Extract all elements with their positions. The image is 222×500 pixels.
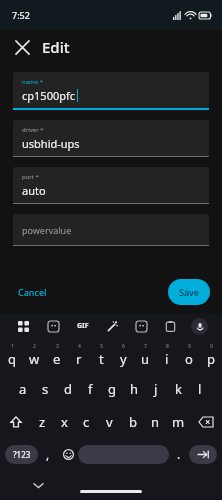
- staticText: port *: [22, 173, 39, 181]
- staticText: h: [130, 380, 139, 398]
- staticText: 5: [100, 343, 103, 350]
- button[interactable]: driver *: [13, 120, 209, 157]
- button[interactable]: j: [145, 372, 167, 405]
- button[interactable]: Apps: [8, 314, 38, 338]
- button[interactable]: 1: [0, 338, 23, 372]
- staticText: b: [129, 413, 137, 431]
- staticText: driver *: [22, 126, 44, 134]
- button[interactable]: Translate: [127, 314, 156, 338]
- button[interactable]: Hide keyboard: [28, 475, 48, 495]
- staticText: d: [64, 380, 72, 398]
- button[interactable]: 8: [156, 338, 178, 372]
- staticText: v: [106, 413, 113, 431]
- button[interactable]: 6: [112, 338, 134, 372]
- staticText: j: [154, 380, 158, 398]
- button[interactable]: 0: [200, 338, 222, 372]
- button[interactable]: powervalue: [13, 214, 209, 246]
- staticText: auto: [22, 183, 46, 198]
- button[interactable]: Cancel: [12, 281, 53, 303]
- button[interactable]: c: [75, 405, 98, 438]
- staticText: cp1500pfc: [22, 88, 76, 103]
- button[interactable]: l: [189, 372, 211, 405]
- button[interactable]: 2: [23, 338, 46, 372]
- button[interactable]: 4: [68, 338, 90, 372]
- staticText: z: [39, 413, 46, 431]
- staticText: o: [185, 350, 193, 368]
- staticText: q: [8, 350, 16, 368]
- staticText: i: [165, 350, 169, 368]
- staticText: u: [141, 350, 150, 368]
- staticText: ?123: [13, 449, 31, 460]
- button[interactable]: f: [79, 372, 101, 405]
- button[interactable]: h: [123, 372, 145, 405]
- staticText: n: [151, 413, 160, 431]
- staticText: l: [198, 380, 202, 398]
- button[interactable]: x: [53, 405, 75, 438]
- staticText: k: [175, 380, 182, 398]
- button[interactable]: g: [101, 372, 123, 405]
- staticText: g: [108, 380, 116, 398]
- staticText: e: [53, 350, 61, 368]
- button[interactable]: ?123: [5, 445, 38, 464]
- staticText: a: [19, 380, 27, 398]
- staticText: 9: [188, 343, 191, 350]
- button[interactable]: Magic: [98, 314, 127, 338]
- staticText: t: [99, 350, 104, 368]
- staticText: powervalue: [22, 224, 72, 236]
- button[interactable]: k: [167, 372, 189, 405]
- button[interactable]: m: [167, 405, 190, 438]
- button[interactable]: Voice input: [185, 314, 214, 338]
- staticText: c: [83, 413, 90, 431]
- staticText: 1: [11, 343, 14, 350]
- staticText: Save: [179, 286, 200, 298]
- staticText: x: [61, 413, 68, 431]
- staticText: .: [177, 446, 181, 462]
- button[interactable]: GIF: [68, 314, 98, 338]
- button[interactable]: 5: [90, 338, 112, 372]
- staticText: name *: [22, 78, 43, 86]
- staticText: w: [29, 350, 40, 368]
- staticText: 6: [122, 343, 125, 350]
- staticText: r: [76, 350, 82, 368]
- button[interactable]: b: [121, 405, 144, 438]
- staticText: usbhid-ups: [22, 136, 80, 151]
- staticText: 7: [144, 343, 147, 350]
- button[interactable]: a: [11, 372, 34, 405]
- button[interactable]: Shift: [0, 405, 31, 438]
- staticText: Edit: [42, 37, 70, 57]
- button[interactable]: .: [169, 438, 189, 470]
- staticText: 8: [166, 343, 169, 350]
- button[interactable]: s: [34, 372, 57, 405]
- button[interactable]: n: [144, 405, 167, 438]
- staticText: p: [207, 350, 215, 368]
- staticText: 0: [210, 343, 213, 350]
- staticText: Cancel: [18, 286, 47, 298]
- staticText: f: [88, 380, 93, 398]
- staticText: GIF: [77, 321, 89, 331]
- staticText: m: [172, 413, 185, 431]
- button[interactable]: Enter: [189, 445, 217, 464]
- button[interactable]: port *: [13, 167, 209, 204]
- button[interactable]: 9: [178, 338, 200, 372]
- button[interactable]: Save: [168, 279, 210, 305]
- button[interactable]: Space: [78, 445, 169, 464]
- staticText: 7:52: [12, 9, 30, 21]
- button[interactable]: name *: [13, 72, 209, 110]
- button[interactable]: v: [98, 405, 121, 438]
- button[interactable]: Emoji: [58, 438, 78, 470]
- staticText: 3: [56, 343, 59, 350]
- staticText: s: [42, 380, 49, 398]
- button[interactable]: Backspace: [190, 405, 222, 438]
- button[interactable]: Close: [8, 33, 36, 61]
- button[interactable]: Clipboard: [156, 314, 185, 338]
- button[interactable]: z: [31, 405, 53, 438]
- button[interactable]: ,: [38, 438, 58, 470]
- button[interactable]: d: [57, 372, 79, 405]
- staticText: 4: [78, 343, 81, 350]
- staticText: ,: [46, 446, 50, 462]
- staticText: 2: [33, 343, 36, 350]
- button[interactable]: 3: [46, 338, 68, 372]
- staticText: y: [120, 350, 127, 368]
- button[interactable]: Stickers: [38, 314, 68, 338]
- button[interactable]: 7: [134, 338, 156, 372]
